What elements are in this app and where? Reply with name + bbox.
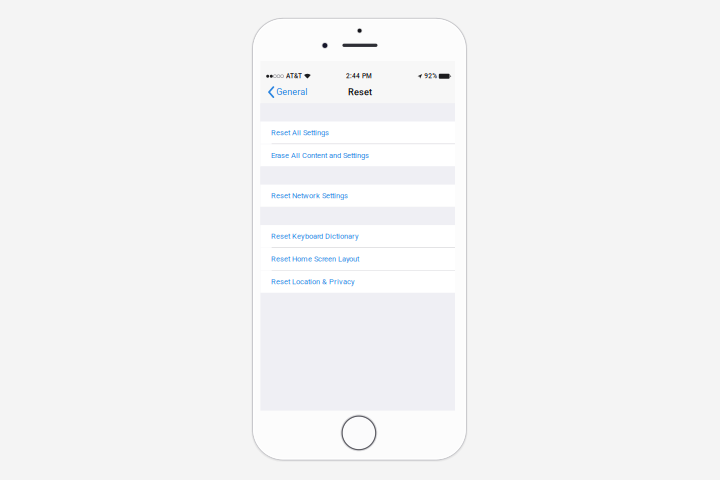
staticText: Reset Location & Privacy xyxy=(271,277,355,286)
staticText: 92% xyxy=(424,72,437,80)
staticText: General xyxy=(276,87,307,97)
staticText: Reset Home Screen Layout xyxy=(271,254,359,263)
button[interactable]: Erase All Content and Settings xyxy=(260,144,455,166)
button[interactable]: Reset Network Settings xyxy=(260,185,455,207)
staticText: Reset Network Settings xyxy=(271,191,348,200)
staticText: Reset xyxy=(348,87,372,97)
button[interactable]: Reset Home Screen Layout xyxy=(260,248,455,270)
staticText: Reset Keyboard Dictionary xyxy=(271,232,359,240)
staticText: Erase All Content and Settings xyxy=(271,151,369,160)
button[interactable]: Reset xyxy=(344,84,376,100)
staticText: 2:44 PM xyxy=(346,72,372,80)
staticText: Reset All Settings xyxy=(271,128,329,137)
button[interactable]: General xyxy=(266,85,309,99)
button[interactable]: Reset Location & Privacy xyxy=(260,270,455,293)
button[interactable]: Reset Keyboard Dictionary xyxy=(260,225,455,247)
staticText: AT&T xyxy=(286,72,302,80)
button[interactable]: Reset All Settings xyxy=(260,121,455,144)
